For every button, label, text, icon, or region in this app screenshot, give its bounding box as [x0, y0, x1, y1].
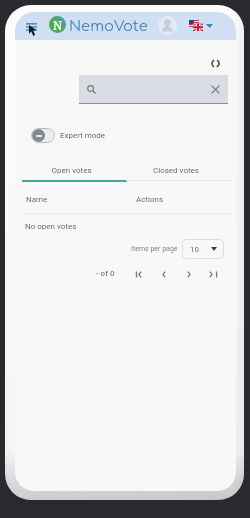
button[interactable]: First page	[133, 268, 145, 280]
staticText: - of 0	[96, 269, 115, 278]
staticText: NemoVote	[69, 18, 148, 34]
button[interactable]: Previous page	[158, 268, 170, 280]
button[interactable]: Menu	[23, 19, 40, 36]
staticText: Open votes	[51, 166, 92, 175]
staticText: 10	[190, 245, 199, 254]
staticText: N	[53, 17, 63, 33]
button[interactable]: Open votes	[22, 161, 127, 182]
button[interactable]: Next page	[183, 268, 195, 280]
staticText: Closed votes	[153, 166, 199, 175]
staticText: Expert mode	[60, 131, 106, 140]
button[interactable]: Closed votes	[126, 161, 231, 181]
button[interactable]	[79, 75, 228, 103]
staticText: Items per page	[131, 245, 178, 253]
button[interactable]: Account	[158, 16, 177, 35]
staticText: Name	[26, 195, 48, 204]
button[interactable]: Refresh	[208, 56, 223, 71]
button[interactable]: Language	[189, 20, 213, 31]
staticText: Actions	[136, 195, 164, 204]
button[interactable]: Last page	[208, 268, 220, 280]
button[interactable]: Expert mode	[31, 128, 106, 143]
button[interactable]: 10	[182, 239, 224, 259]
staticText: No open votes	[25, 222, 77, 231]
